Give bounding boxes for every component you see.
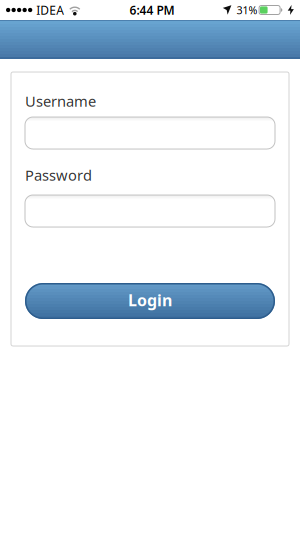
staticText: 6:44 PM — [129, 2, 174, 18]
button[interactable]: Username — [25, 117, 275, 149]
staticText: 31% — [237, 3, 258, 17]
staticText: Username — [25, 91, 96, 111]
staticText: IDEA — [36, 2, 64, 18]
button[interactable]: Login — [25, 283, 275, 319]
staticText: Login — [128, 289, 172, 311]
button[interactable]: Password — [25, 195, 275, 227]
staticText: Password — [25, 165, 92, 185]
